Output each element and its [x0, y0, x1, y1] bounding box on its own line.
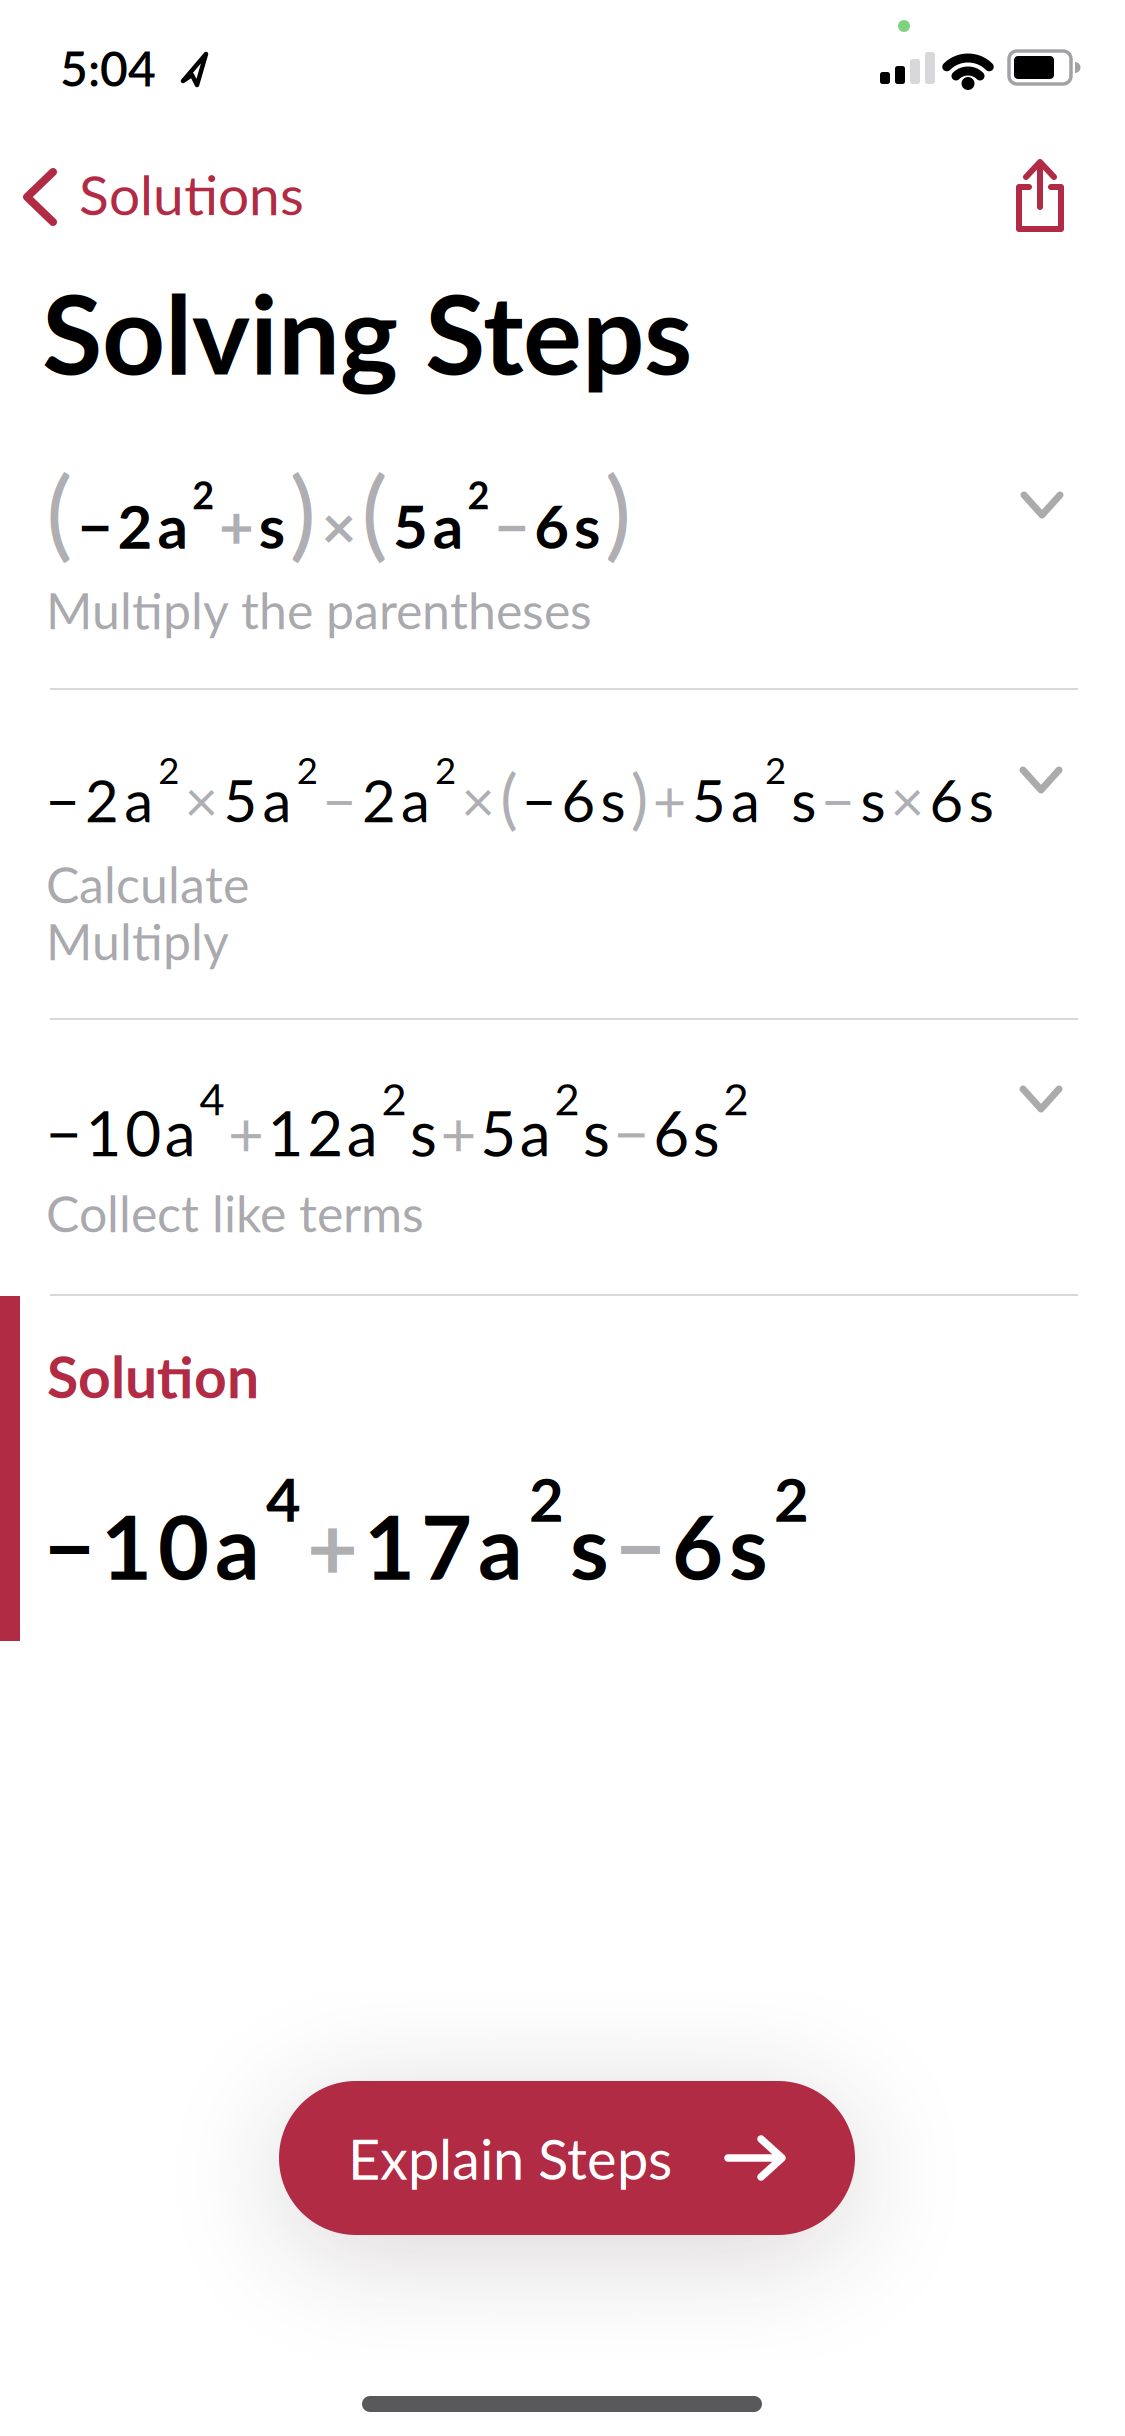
- staticText: ): [290, 450, 317, 570]
- staticText: 5:04: [60, 39, 156, 97]
- staticText: +: [219, 489, 254, 561]
- staticText: −10a: [46, 1095, 196, 1169]
- staticText: s: [410, 1095, 437, 1169]
- staticText: (: [46, 450, 73, 570]
- staticText: 2a: [362, 765, 430, 835]
- staticText: Solutions: [79, 161, 304, 227]
- staticText: 5a: [393, 489, 463, 561]
- staticText: 2: [381, 1072, 406, 1124]
- staticText: −: [615, 1493, 666, 1599]
- staticText: 4: [199, 1072, 224, 1124]
- staticText: −6s: [522, 765, 626, 835]
- staticText: 2: [297, 748, 318, 792]
- staticText: s: [583, 1095, 610, 1169]
- staticText: 5a: [480, 1095, 551, 1169]
- staticText: 2: [192, 472, 214, 517]
- staticText: Calculate: [46, 854, 249, 914]
- staticText: 12a: [268, 1095, 378, 1169]
- staticText: Multiply: [46, 911, 229, 971]
- staticText: +: [228, 1095, 264, 1169]
- staticText: 2: [529, 1463, 564, 1534]
- staticText: 6s: [534, 489, 600, 561]
- button[interactable]: (: [0, 440, 1125, 688]
- staticText: 2: [723, 1072, 748, 1124]
- staticText: ×: [461, 765, 495, 835]
- staticText: (: [500, 758, 517, 836]
- staticText: 2: [435, 748, 456, 792]
- staticText: Collect like terms: [46, 1183, 424, 1243]
- staticText: 17a: [364, 1493, 523, 1599]
- staticText: Multiply the parentheses: [46, 580, 592, 640]
- button[interactable]: Back: [10, 152, 320, 242]
- staticText: −10a: [44, 1493, 260, 1599]
- staticText: −: [614, 1095, 650, 1169]
- staticText: 4: [266, 1463, 301, 1534]
- staticText: ): [631, 758, 648, 836]
- staticText: 2: [554, 1072, 579, 1124]
- staticText: Solution: [47, 1342, 259, 1410]
- staticText: ): [605, 450, 632, 570]
- button[interactable]: Share: [988, 150, 1088, 245]
- staticText: s: [791, 765, 816, 835]
- staticText: −: [494, 489, 529, 561]
- staticText: 2: [468, 472, 490, 517]
- staticText: −: [821, 765, 855, 835]
- staticText: 6s: [653, 1095, 720, 1169]
- staticText: 2: [158, 748, 179, 792]
- button[interactable]: −10a: [0, 1020, 1125, 1294]
- staticText: Explain Steps: [348, 2124, 672, 2192]
- staticText: −2a: [78, 489, 187, 561]
- staticText: 6s: [672, 1493, 768, 1599]
- staticText: +: [307, 1493, 358, 1599]
- staticText: 6s: [930, 765, 994, 835]
- staticText: s: [259, 489, 285, 561]
- staticText: −2a: [46, 765, 153, 835]
- staticText: 2: [765, 748, 786, 792]
- staticText: (: [361, 450, 388, 570]
- staticText: +: [441, 1095, 477, 1169]
- staticText: 5a: [223, 765, 292, 835]
- staticText: −: [323, 765, 357, 835]
- staticText: 2: [774, 1463, 809, 1534]
- staticText: ×: [321, 489, 356, 561]
- staticText: ×: [184, 765, 218, 835]
- staticText: s: [860, 765, 885, 835]
- staticText: s: [570, 1493, 609, 1599]
- button[interactable]: Explain Steps: [279, 2081, 855, 2235]
- staticText: Solving Steps: [42, 266, 692, 398]
- staticText: 5a: [692, 765, 760, 835]
- staticText: +: [653, 765, 687, 835]
- button[interactable]: −2a: [0, 690, 1125, 1018]
- staticText: ×: [890, 765, 924, 835]
